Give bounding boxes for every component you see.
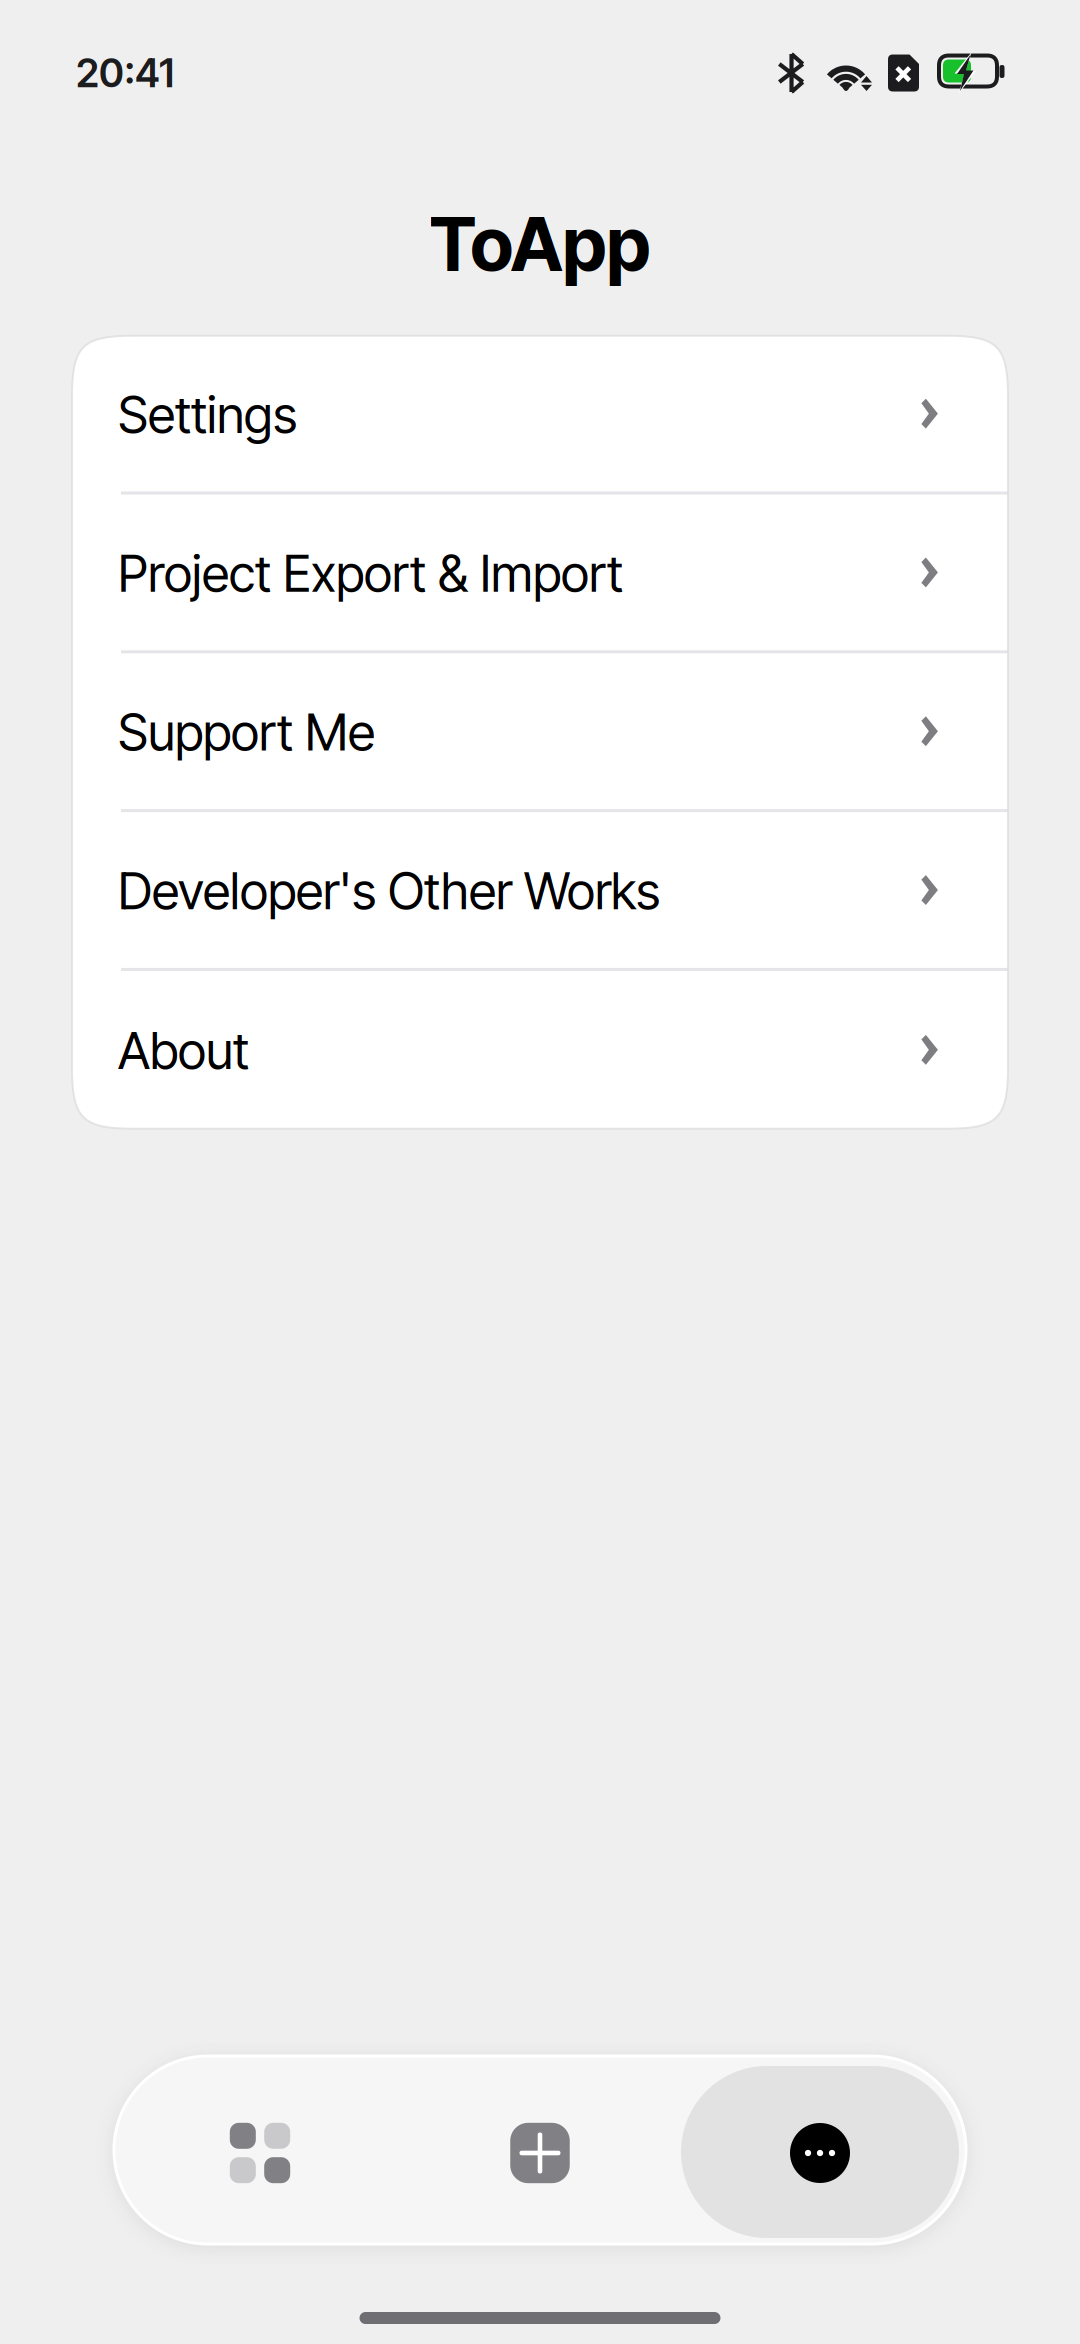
button[interactable]: Support Me (72, 653, 1008, 812)
button[interactable]: About (72, 971, 1008, 1129)
staticText: About (118, 1020, 249, 1081)
staticText: Project Export & Import (118, 543, 623, 604)
button[interactable]: Project Export & Import (72, 494, 1008, 653)
staticText: Support Me (118, 701, 375, 763)
button[interactable]: New item (398, 2064, 682, 2236)
staticText: 20:41 (76, 49, 174, 97)
staticText: Developer's Other Works (118, 860, 660, 921)
button[interactable]: More (682, 2056, 958, 2244)
button[interactable]: Developer's Other Works (72, 812, 1008, 971)
button[interactable]: Settings (72, 336, 1008, 494)
button[interactable]: Projects (122, 2064, 398, 2236)
staticText: ToApp (429, 200, 650, 289)
staticText: Settings (118, 384, 297, 445)
